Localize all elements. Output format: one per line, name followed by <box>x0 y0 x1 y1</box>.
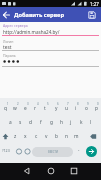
staticText: z <box>14 133 17 140</box>
button[interactable]: j <box>66 116 76 129</box>
staticText: d <box>29 119 32 126</box>
staticText: 4 <box>37 102 39 106</box>
button[interactable]: k <box>76 116 86 129</box>
button[interactable] <box>86 146 97 157</box>
button[interactable]: a <box>5 116 15 129</box>
button[interactable]: w <box>10 102 20 115</box>
button[interactable]: q <box>0 102 10 115</box>
button[interactable]: y <box>51 102 61 115</box>
staticText: test <box>3 44 12 51</box>
button[interactable]: e <box>20 102 30 115</box>
button[interactable] <box>87 10 97 20</box>
staticText: a <box>9 119 12 126</box>
staticText: t <box>44 105 46 112</box>
staticText: k <box>80 119 83 126</box>
button[interactable] <box>45 165 57 177</box>
staticText: n <box>65 133 68 140</box>
staticText: f <box>40 119 42 126</box>
staticText: p <box>95 105 98 112</box>
staticText: i <box>75 105 77 112</box>
staticText: Логин <box>3 39 14 44</box>
button[interactable] <box>0 9 12 21</box>
staticText: h <box>60 119 63 126</box>
staticText: q <box>4 105 7 112</box>
staticText: c <box>35 133 38 140</box>
button[interactable]: x <box>20 130 30 143</box>
staticText: 5 <box>47 102 49 106</box>
staticText: ВВЕСТИ <box>48 150 58 154</box>
staticText: e <box>24 105 27 112</box>
staticText: 6 <box>57 102 59 106</box>
staticText: s <box>19 119 22 126</box>
staticText: m <box>74 133 79 140</box>
staticText: Пароль <box>3 53 16 58</box>
staticText: g <box>50 119 53 126</box>
button[interactable] <box>21 165 33 177</box>
button[interactable]: i <box>71 102 81 115</box>
staticText: 1 <box>7 102 9 106</box>
button[interactable]: f <box>36 116 46 129</box>
staticText: v <box>45 133 48 140</box>
button[interactable]: . <box>78 145 80 153</box>
button[interactable]: c <box>31 130 41 143</box>
staticText: u <box>65 105 68 112</box>
staticText: http://admin.masha24.by/ <box>3 29 60 35</box>
button[interactable]: o <box>81 102 91 115</box>
staticText: x <box>24 133 27 140</box>
button[interactable]: m <box>71 130 81 143</box>
staticText: 7 <box>67 102 69 106</box>
button[interactable] <box>1 130 10 143</box>
button[interactable]: p <box>91 102 101 115</box>
staticText: l <box>90 119 92 126</box>
staticText: y <box>55 105 58 112</box>
button[interactable]: h <box>56 116 66 129</box>
button[interactable]: t <box>40 102 50 115</box>
staticText: j <box>70 119 72 126</box>
button[interactable]: r <box>30 102 40 115</box>
button[interactable]: ВВЕСТИ <box>32 147 73 157</box>
staticText: Адрес сервера <box>3 23 28 28</box>
button[interactable]: v <box>41 130 51 143</box>
button[interactable]: s <box>15 116 25 129</box>
staticText: 0 <box>97 102 99 106</box>
staticText: b <box>55 133 58 140</box>
button[interactable]: b <box>51 130 61 143</box>
staticText: o <box>85 105 88 112</box>
button[interactable]: d <box>25 116 35 129</box>
staticText: 2 <box>17 102 19 106</box>
staticText: 3 <box>27 102 29 106</box>
staticText: Добавить сервер <box>14 11 64 19</box>
button[interactable]: l <box>86 116 96 129</box>
button[interactable]: n <box>61 130 71 143</box>
button[interactable]: g <box>46 116 56 129</box>
button[interactable]: z <box>10 130 20 143</box>
button[interactable]: u <box>61 102 71 115</box>
staticText: r <box>34 105 36 112</box>
staticText: 1:27 <box>90 1 99 7</box>
button[interactable]: ?123 <box>2 148 10 153</box>
staticText: 8 <box>77 102 79 106</box>
button[interactable] <box>86 130 99 143</box>
staticText: 9 <box>87 102 89 106</box>
staticText: w <box>13 105 17 112</box>
button[interactable] <box>68 165 80 177</box>
